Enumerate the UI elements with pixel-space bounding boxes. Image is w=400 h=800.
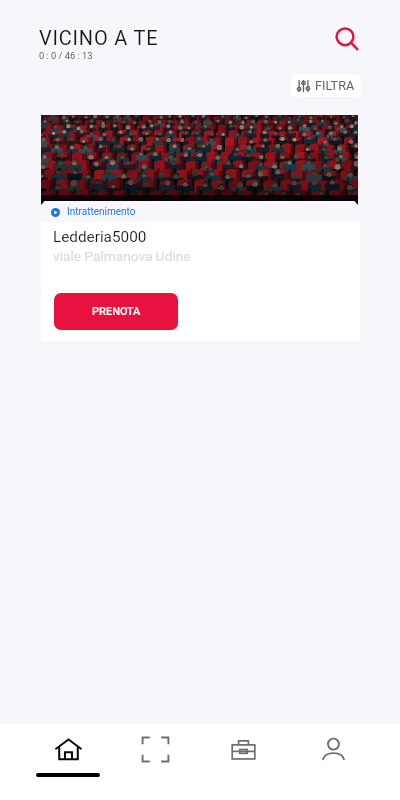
button[interactable]: FILTRA bbox=[291, 74, 361, 97]
staticText: PRENOTA bbox=[92, 305, 141, 318]
button[interactable]: Work bbox=[198, 724, 288, 800]
button[interactable]: Scan bbox=[110, 724, 200, 800]
button[interactable]: Ledderia5000 bbox=[41, 222, 360, 341]
button[interactable] bbox=[41, 115, 358, 201]
button[interactable]: Profile bbox=[288, 724, 378, 800]
staticText: 0 : 0 / 46 : 13 bbox=[39, 50, 93, 61]
button[interactable]: Search bbox=[327, 20, 369, 62]
staticText: FILTRA bbox=[315, 78, 355, 93]
staticText: VICINO A TE bbox=[39, 26, 159, 49]
button[interactable]: PRENOTA bbox=[54, 293, 178, 330]
staticText: Intrattenimento bbox=[67, 206, 136, 218]
button[interactable]: Home bbox=[23, 724, 113, 800]
staticText: Ledderia5000 bbox=[53, 228, 147, 246]
staticText: viale Palmanova Udine bbox=[53, 248, 191, 264]
